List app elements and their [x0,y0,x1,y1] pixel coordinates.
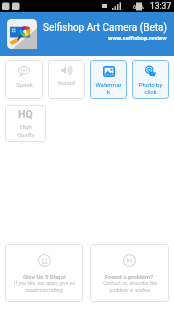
other: Speak [18,66,30,77]
button[interactable]: Watermark [90,60,127,99]
button[interactable]: Speak [5,60,43,99]
button[interactable]: Found a problem? [90,244,169,302]
staticText: Found a problem? [105,273,154,280]
staticText: Selfishop Art Camera (Beta) [43,22,167,34]
staticText: Contact us, describe the problem or wish… [103,280,157,293]
staticText: Speak [16,81,33,88]
staticText: If you like our apps, give us maximum ra… [14,280,75,293]
button[interactable]: HQ [5,105,46,142]
staticText: Give Us 5 Stars! [23,273,66,280]
staticText: High Quality [17,124,35,138]
staticText: Watermark [95,81,122,95]
button[interactable]: Photo by click [132,60,169,99]
staticText: Sound [58,79,75,86]
staticText: www.selfishop.review [108,34,167,41]
other: App icon [7,19,37,49]
other: Watermark [103,66,115,77]
button[interactable]: Give Us 5 Stars! [5,244,83,302]
button[interactable]: Sound [48,60,85,99]
staticText: 61% [133,3,145,10]
staticText: HQ [18,108,33,120]
staticText: 13:37 [150,1,172,11]
other: Photo by click [145,66,157,77]
staticText: Photo by click [137,81,164,95]
other: Sound [61,66,73,75]
